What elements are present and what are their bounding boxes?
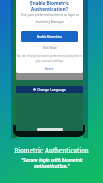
button[interactable]: Change Language [16, 86, 83, 93]
staticText: Enable Biometrics [37, 35, 62, 39]
staticText: Change Language [37, 87, 66, 92]
staticText: "Secure login with biometric authenticat… [21, 157, 83, 170]
staticText: Biometric Authentication [14, 146, 89, 154]
button[interactable]: Not Now [40, 44, 60, 50]
staticText: Use your preferred biometric to login to… [21, 13, 79, 23]
staticText: Reset [45, 67, 54, 71]
button[interactable]: Enable Biometrics [21, 31, 78, 42]
staticText: Enable Biometric Authentication? [30, 0, 69, 12]
button[interactable]: Reset [42, 67, 57, 71]
staticText: You can change biometric preferences at … [16, 54, 83, 62]
staticText: Not Now [43, 45, 57, 49]
